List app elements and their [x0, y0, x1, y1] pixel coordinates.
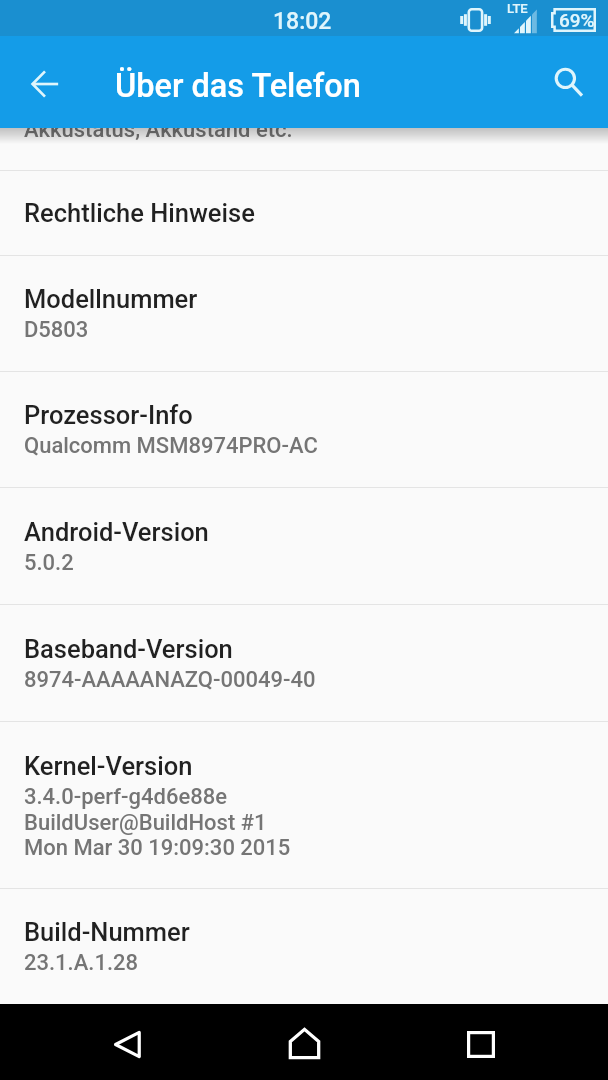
- staticText: LTE: [507, 1, 528, 16]
- button[interactable]: Baseband-Version: [0, 605, 608, 721]
- button[interactable]: Android-Version: [0, 488, 608, 604]
- staticText: 8974-AAAAANAZQ-00049-40: [24, 667, 316, 693]
- staticText: Modellnummer: [24, 284, 198, 314]
- button[interactable]: Modellnummer: [0, 256, 608, 371]
- staticText: Kernel-Version: [24, 751, 193, 781]
- button[interactable]: Build-Nummer: [0, 889, 608, 1004]
- staticText: Akkustatus, Akkustand etc.: [24, 128, 293, 143]
- staticText: 3.4.0-perf-g4d6e88e BuildUser@BuildHost …: [24, 784, 291, 860]
- staticText: 23.1.A.1.28: [24, 950, 139, 976]
- staticText: 18:02: [273, 8, 332, 35]
- button[interactable]: Recent apps: [443, 1004, 521, 1080]
- staticText: 69%: [559, 9, 595, 31]
- button[interactable]: Rechtliche Hinweise: [0, 171, 608, 255]
- button[interactable]: Search: [544, 60, 592, 108]
- staticText: Build-Nummer: [24, 917, 190, 947]
- button[interactable]: Back: [21, 61, 69, 109]
- staticText: Prozessor-Info: [24, 400, 193, 430]
- staticText: 5.0.2: [24, 550, 74, 576]
- staticText: Baseband-Version: [24, 634, 233, 664]
- staticText: Über das Telefon: [115, 67, 361, 105]
- button[interactable]: Back: [88, 1004, 166, 1080]
- button[interactable]: Home: [265, 1004, 343, 1080]
- staticText: Android-Version: [24, 517, 209, 547]
- staticText: Rechtliche Hinweise: [24, 198, 255, 228]
- button[interactable]: Prozessor-Info: [0, 372, 608, 487]
- staticText: Qualcomm MSM8974PRO-AC: [24, 433, 318, 459]
- button[interactable]: Kernel-Version: [0, 722, 608, 888]
- staticText: D5803: [24, 317, 89, 343]
